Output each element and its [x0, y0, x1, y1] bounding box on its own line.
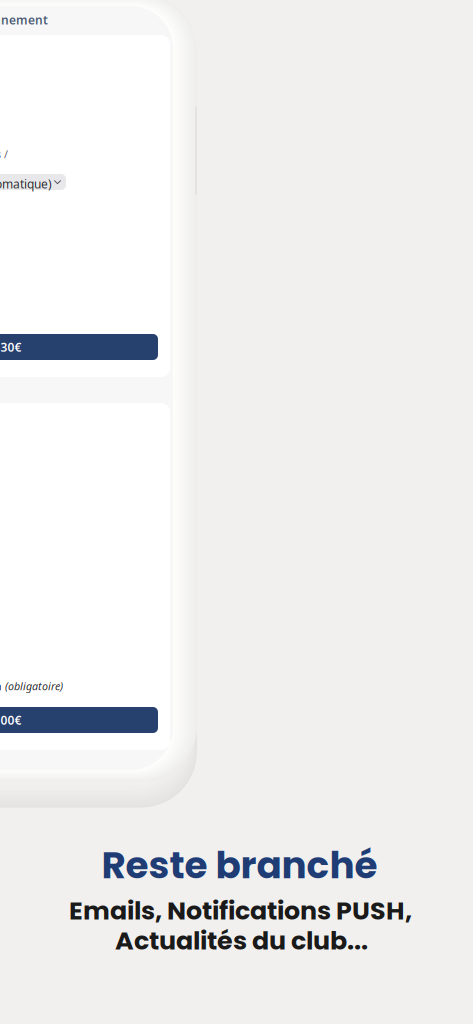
staticText: Reste branché — [101, 839, 377, 891]
staticText: Assurance + licence compétition — [0, 679, 2, 693]
staticText: Emails, Notifications PUSH, — [69, 893, 412, 928]
button[interactable]: Je règle 330€ — [0, 334, 158, 360]
staticText: Je règle 500€ — [0, 712, 21, 728]
staticText: Paiement en 3 fois sans frais (automatiq… — [0, 176, 52, 192]
staticText: (obligatoire) — [5, 679, 63, 693]
button[interactable]: Paiement en 3 fois sans frais (automatiq… — [0, 174, 66, 190]
staticText: Actualités du club... — [115, 923, 368, 958]
staticText: Adhésion club + licence FFT 2025 / 2026,… — [0, 147, 8, 161]
staticText: Je règle 330€ — [0, 339, 21, 355]
button[interactable]: Je règle 500€ — [0, 707, 158, 733]
staticText: Choisissez votre abonnement — [0, 12, 48, 28]
